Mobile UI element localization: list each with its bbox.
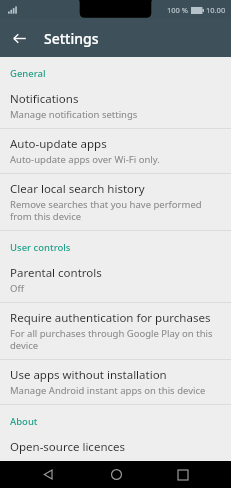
staticText: Auto-update apps over Wi-Fi only. [10,153,160,166]
staticText: Notifications [10,91,79,107]
staticText: Require authentication for purchases [10,310,211,326]
staticText: Use apps without installation [10,367,167,383]
staticText: For all purchases through Google Play on… [10,327,221,352]
staticText: Manage notification settings [10,108,138,121]
staticText: 100 % [167,5,189,15]
button[interactable]: Back [4,23,34,53]
button[interactable]: Open-source licences [0,432,231,461]
button[interactable]: Clear local search history [0,174,231,230]
staticText: Off [10,282,24,295]
staticText: General [10,67,46,80]
staticText: Parental controls [10,265,102,281]
button[interactable]: Auto-update apps [0,129,231,173]
staticText: Settings [44,29,99,48]
staticText: Open-source licences [10,439,125,454]
button[interactable]: Notifications [0,84,231,128]
staticText: Remove searches that you have performed … [10,198,221,223]
button[interactable]: Require authentication for purchases [0,303,231,359]
staticText: User controls [10,241,71,254]
button[interactable]: Back [28,461,68,488]
staticText: Clear local search history [10,181,145,197]
staticText: Auto-update apps [10,136,107,152]
button[interactable]: Home [96,461,136,488]
staticText: Manage Android instant apps on this devi… [10,384,206,397]
staticText: 10.00 [206,5,226,15]
button[interactable]: Parental controls [0,258,231,302]
button[interactable]: Use apps without installation [0,360,231,404]
staticText: About [10,415,38,428]
button[interactable]: Recent apps [163,461,203,488]
